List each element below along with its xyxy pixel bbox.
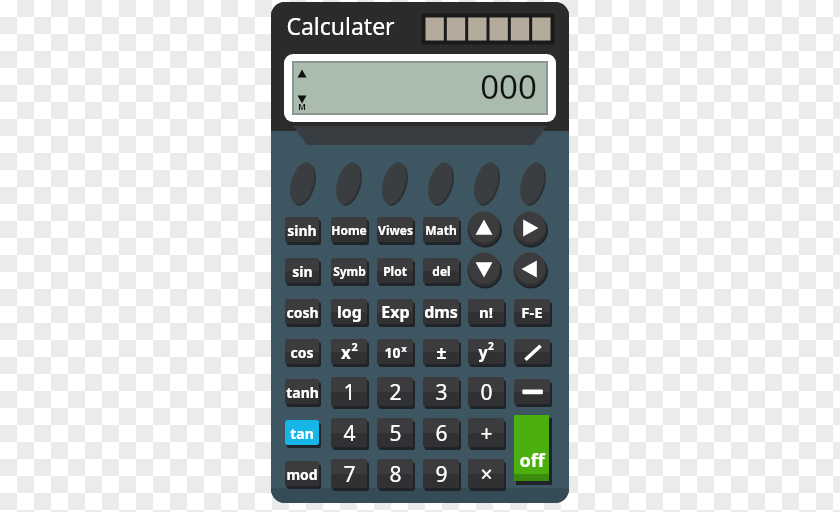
- button[interactable]: off: [514, 415, 552, 485]
- button[interactable]: dms: [423, 299, 461, 327]
- button[interactable]: slash: [514, 339, 552, 367]
- staticText: Plot: [383, 263, 407, 279]
- button[interactable]: Home: [331, 217, 369, 245]
- staticText: x: [401, 342, 407, 354]
- staticText: M: [298, 101, 306, 112]
- button[interactable]: 5: [377, 418, 415, 450]
- button[interactable]: Math: [423, 217, 461, 245]
- staticText: 6: [435, 419, 448, 448]
- button[interactable]: Symb: [331, 258, 369, 286]
- staticText: Exp: [381, 301, 410, 323]
- button[interactable]: x: [331, 339, 369, 367]
- button[interactable]: 0: [468, 377, 506, 409]
- staticText: sin: [292, 262, 313, 281]
- staticText: ±: [436, 340, 447, 365]
- staticText: Math: [425, 222, 457, 238]
- button[interactable]: mod: [285, 461, 321, 489]
- button[interactable]: tan: [285, 420, 321, 448]
- button[interactable]: log: [331, 299, 369, 327]
- button[interactable]: 10: [377, 339, 415, 367]
- staticText: 8: [389, 460, 402, 489]
- staticText: y: [478, 341, 488, 363]
- staticText: Home: [331, 222, 367, 238]
- staticText: x: [341, 341, 351, 364]
- staticText: 10: [384, 343, 401, 362]
- button[interactable]: Down: [467, 252, 501, 286]
- button[interactable]: 4: [331, 418, 369, 450]
- staticText: 1: [343, 378, 356, 407]
- button[interactable]: Right: [513, 211, 547, 245]
- staticText: del: [432, 263, 451, 279]
- button[interactable]: 6: [423, 418, 461, 450]
- staticText: mod: [286, 465, 318, 484]
- button[interactable]: minus: [514, 379, 552, 407]
- staticText: 3: [435, 378, 448, 407]
- staticText: ×: [480, 460, 493, 489]
- button[interactable]: 2: [377, 377, 415, 409]
- button[interactable]: +: [468, 418, 506, 450]
- staticText: cos: [290, 343, 314, 362]
- staticText: sinh: [287, 221, 317, 240]
- button[interactable]: cos: [285, 339, 321, 367]
- button[interactable]: sinh: [285, 217, 321, 245]
- staticText: off: [519, 448, 545, 473]
- button[interactable]: 9: [423, 459, 461, 491]
- button[interactable]: Left: [513, 252, 547, 286]
- staticText: 9: [435, 460, 448, 489]
- button[interactable]: 7: [331, 459, 369, 491]
- button[interactable]: 3: [423, 377, 461, 409]
- button[interactable]: n!: [468, 299, 506, 327]
- staticText: dms: [424, 301, 458, 323]
- staticText: 2: [389, 378, 402, 407]
- staticText: n!: [479, 302, 493, 322]
- button[interactable]: ±: [423, 339, 461, 367]
- button[interactable]: sin: [285, 258, 321, 286]
- staticText: 4: [343, 419, 356, 448]
- button[interactable]: 1: [331, 377, 369, 409]
- staticText: F-E: [521, 302, 543, 322]
- staticText: 7: [343, 460, 356, 489]
- button[interactable]: Viwes: [377, 217, 415, 245]
- staticText: tan: [290, 424, 314, 443]
- staticText: 5: [389, 419, 402, 448]
- staticText: Symb: [333, 263, 366, 279]
- staticText: Calculater: [286, 10, 395, 41]
- staticText: 2: [351, 339, 358, 354]
- button[interactable]: Up: [467, 211, 501, 245]
- staticText: +: [480, 419, 493, 448]
- button[interactable]: tanh: [285, 379, 321, 407]
- button[interactable]: del: [423, 258, 461, 286]
- staticText: 0: [480, 378, 493, 407]
- staticText: Viwes: [378, 222, 413, 238]
- button[interactable]: Exp: [377, 299, 415, 327]
- button[interactable]: Plot: [377, 258, 415, 286]
- button[interactable]: 8: [377, 459, 415, 491]
- staticText: tanh: [286, 383, 319, 402]
- button[interactable]: cosh: [285, 299, 321, 327]
- staticText: log: [337, 301, 362, 323]
- button[interactable]: y: [468, 339, 506, 367]
- staticText: 000: [480, 64, 537, 109]
- button[interactable]: F-E: [514, 299, 552, 327]
- button[interactable]: ×: [468, 459, 506, 491]
- staticText: cosh: [286, 303, 319, 322]
- staticText: 2: [488, 339, 494, 353]
